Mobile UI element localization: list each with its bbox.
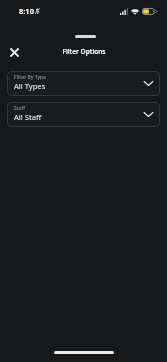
button[interactable]: Close [4,42,24,62]
staticText: All Staff [14,112,42,122]
button[interactable]: Filter By Type [7,71,160,96]
button[interactable]: Drag handle [67,30,104,43]
staticText: Staff [14,105,26,112]
staticText: All Types [14,81,46,91]
staticText: Filter By Type [14,74,47,81]
button[interactable]: Staff [7,102,160,127]
staticText: 8:10 [19,6,34,16]
staticText: Filter Options [62,47,106,56]
